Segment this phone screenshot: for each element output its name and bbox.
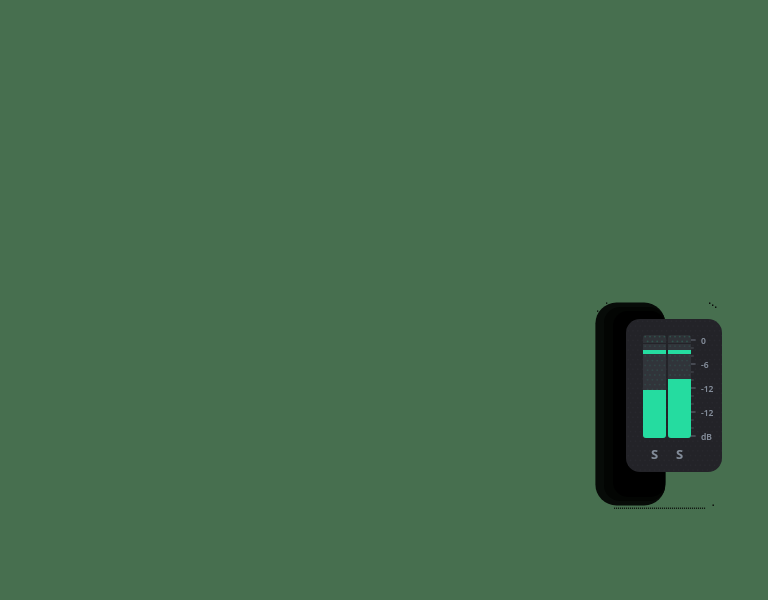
staticText: -12 bbox=[701, 407, 714, 419]
staticText: -6 bbox=[701, 359, 709, 371]
button[interactable]: Left level meter bbox=[643, 344, 666, 438]
button[interactable]: Solo bbox=[668, 445, 691, 463]
staticText: -12 bbox=[701, 383, 714, 395]
staticText: S bbox=[651, 445, 659, 463]
staticText: dB bbox=[701, 431, 712, 443]
staticText: S bbox=[676, 445, 684, 463]
button[interactable]: Right level meter bbox=[668, 344, 691, 438]
staticText: 0 bbox=[701, 335, 706, 347]
button[interactable]: Clip indicator right bbox=[668, 335, 691, 343]
button[interactable]: Channel meters bbox=[626, 319, 722, 472]
button[interactable]: Solo bbox=[643, 445, 666, 463]
button[interactable]: Clip indicator left bbox=[643, 335, 666, 343]
